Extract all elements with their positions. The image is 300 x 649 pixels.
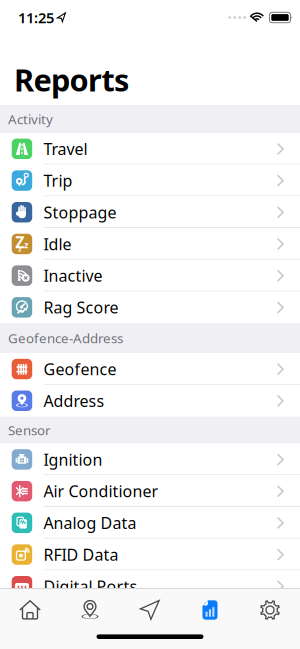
button[interactable]: Inactive bbox=[0, 260, 300, 291]
staticText: Z bbox=[14, 229, 25, 254]
button[interactable]: Geofence bbox=[0, 353, 300, 385]
staticText: Trip bbox=[43, 170, 72, 191]
button[interactable]: Home bbox=[0, 594, 60, 626]
staticText: Idle bbox=[43, 233, 71, 254]
staticText: Digital Ports bbox=[43, 576, 137, 597]
staticText: z bbox=[24, 238, 29, 252]
staticText: Air Conditioner bbox=[43, 480, 158, 502]
button[interactable]: Rag Score bbox=[0, 291, 300, 323]
button[interactable]: Ignition bbox=[0, 444, 300, 475]
staticText: Inactive bbox=[43, 265, 102, 286]
button[interactable]: Digital Ports bbox=[0, 570, 300, 602]
button[interactable]: Reports bbox=[180, 594, 240, 626]
button[interactable]: Settings bbox=[240, 594, 300, 626]
button[interactable]: RFID Data bbox=[0, 539, 300, 570]
button[interactable]: Trip bbox=[0, 165, 300, 196]
button[interactable]: Z bbox=[0, 228, 300, 260]
staticText: Geofence-Address bbox=[8, 329, 123, 347]
staticText: RFID Data bbox=[43, 544, 118, 565]
staticText: Address bbox=[43, 390, 104, 411]
staticText: Rag Score bbox=[43, 297, 118, 318]
staticText: Stoppage bbox=[43, 202, 116, 223]
button[interactable]: Navigation bbox=[120, 594, 180, 626]
staticText: Sensor bbox=[8, 421, 51, 439]
staticText: Ignition bbox=[43, 449, 102, 470]
button[interactable]: Analog Data bbox=[0, 507, 300, 539]
button[interactable]: Travel bbox=[0, 133, 300, 165]
staticText: Analog Data bbox=[43, 512, 136, 533]
button[interactable]: Address bbox=[0, 385, 300, 417]
staticText: z bbox=[18, 244, 22, 255]
staticText: 11:25 bbox=[18, 8, 54, 27]
staticText: Travel bbox=[43, 138, 87, 159]
staticText: Activity bbox=[8, 110, 53, 128]
button[interactable]: Air Conditioner bbox=[0, 475, 300, 507]
staticText: Reports bbox=[14, 59, 129, 100]
button[interactable]: Live Tracking bbox=[60, 594, 120, 626]
staticText: Geofence bbox=[43, 358, 116, 380]
button[interactable]: Stoppage bbox=[0, 196, 300, 228]
